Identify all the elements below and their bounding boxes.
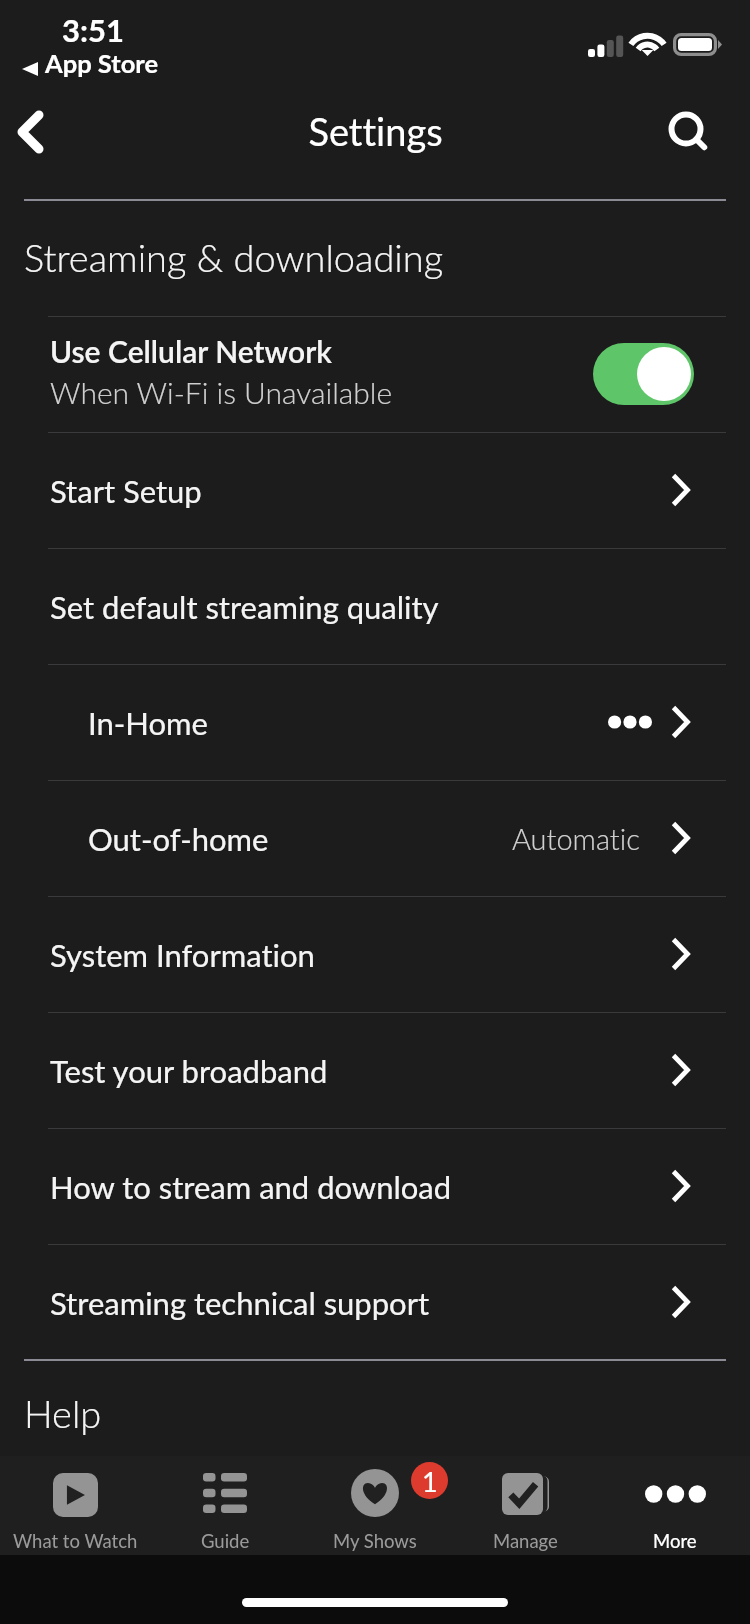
button[interactable]: Guide xyxy=(150,1456,300,1555)
staticText: My Shows xyxy=(333,1530,417,1552)
staticText: 1 xyxy=(422,1465,438,1497)
staticText: Manage xyxy=(493,1530,558,1552)
staticText: Set default streaming quality xyxy=(50,588,439,625)
staticText: Use Cellular Network xyxy=(50,333,332,369)
staticText: Start Setup xyxy=(50,472,202,509)
staticText: Test your broadband xyxy=(50,1052,328,1089)
button[interactable]: In-Home xyxy=(0,664,750,780)
staticText: Automatic xyxy=(512,821,640,856)
staticText: Settings xyxy=(308,108,443,154)
staticText: When Wi-Fi is Unavailable xyxy=(50,374,393,410)
staticText: Out-of-home xyxy=(88,820,269,857)
staticText: How to stream and download xyxy=(50,1168,452,1205)
button[interactable]: 1 xyxy=(300,1456,450,1555)
staticText: What to Watch xyxy=(13,1530,138,1552)
staticText: Streaming & downloading xyxy=(24,234,444,280)
button[interactable]: Use Cellular Network xyxy=(0,316,750,432)
button[interactable]: What to Watch xyxy=(0,1456,150,1555)
button[interactable]: Manage xyxy=(450,1456,600,1555)
button[interactable]: Test your broadband xyxy=(0,1012,750,1128)
button[interactable]: Start Setup xyxy=(0,432,750,548)
button[interactable]: More xyxy=(600,1456,750,1555)
staticText: Help xyxy=(24,1390,102,1436)
staticText: System Information xyxy=(50,936,315,973)
staticText: More xyxy=(653,1530,697,1552)
button[interactable]: Out-of-home xyxy=(0,780,750,896)
staticText: Streaming technical support xyxy=(50,1284,430,1321)
staticText: Guide xyxy=(201,1530,250,1552)
button[interactable]: Search xyxy=(650,94,730,170)
button[interactable]: Back xyxy=(0,94,76,170)
staticText: 3:51 xyxy=(62,11,124,48)
button[interactable]: Streaming technical support xyxy=(0,1244,750,1360)
button[interactable]: How to stream and download xyxy=(0,1128,750,1244)
button[interactable]: System Information xyxy=(0,896,750,1012)
staticText: In-Home xyxy=(88,704,208,741)
staticText: App Store xyxy=(45,48,159,79)
button[interactable]: Set default streaming quality xyxy=(0,548,750,664)
